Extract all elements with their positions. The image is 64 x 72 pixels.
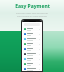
button[interactable] [23,52,41,56]
staticText: Easy Payment [15,3,50,10]
button[interactable] [23,42,41,46]
button[interactable] [23,62,41,66]
button[interactable] [23,27,41,31]
button[interactable] [23,67,41,71]
staticText: Pay your utility bills and top-up your m… [16,12,48,18]
button[interactable] [23,37,41,41]
button[interactable] [23,47,41,51]
button[interactable] [23,57,41,61]
button[interactable] [23,32,41,36]
